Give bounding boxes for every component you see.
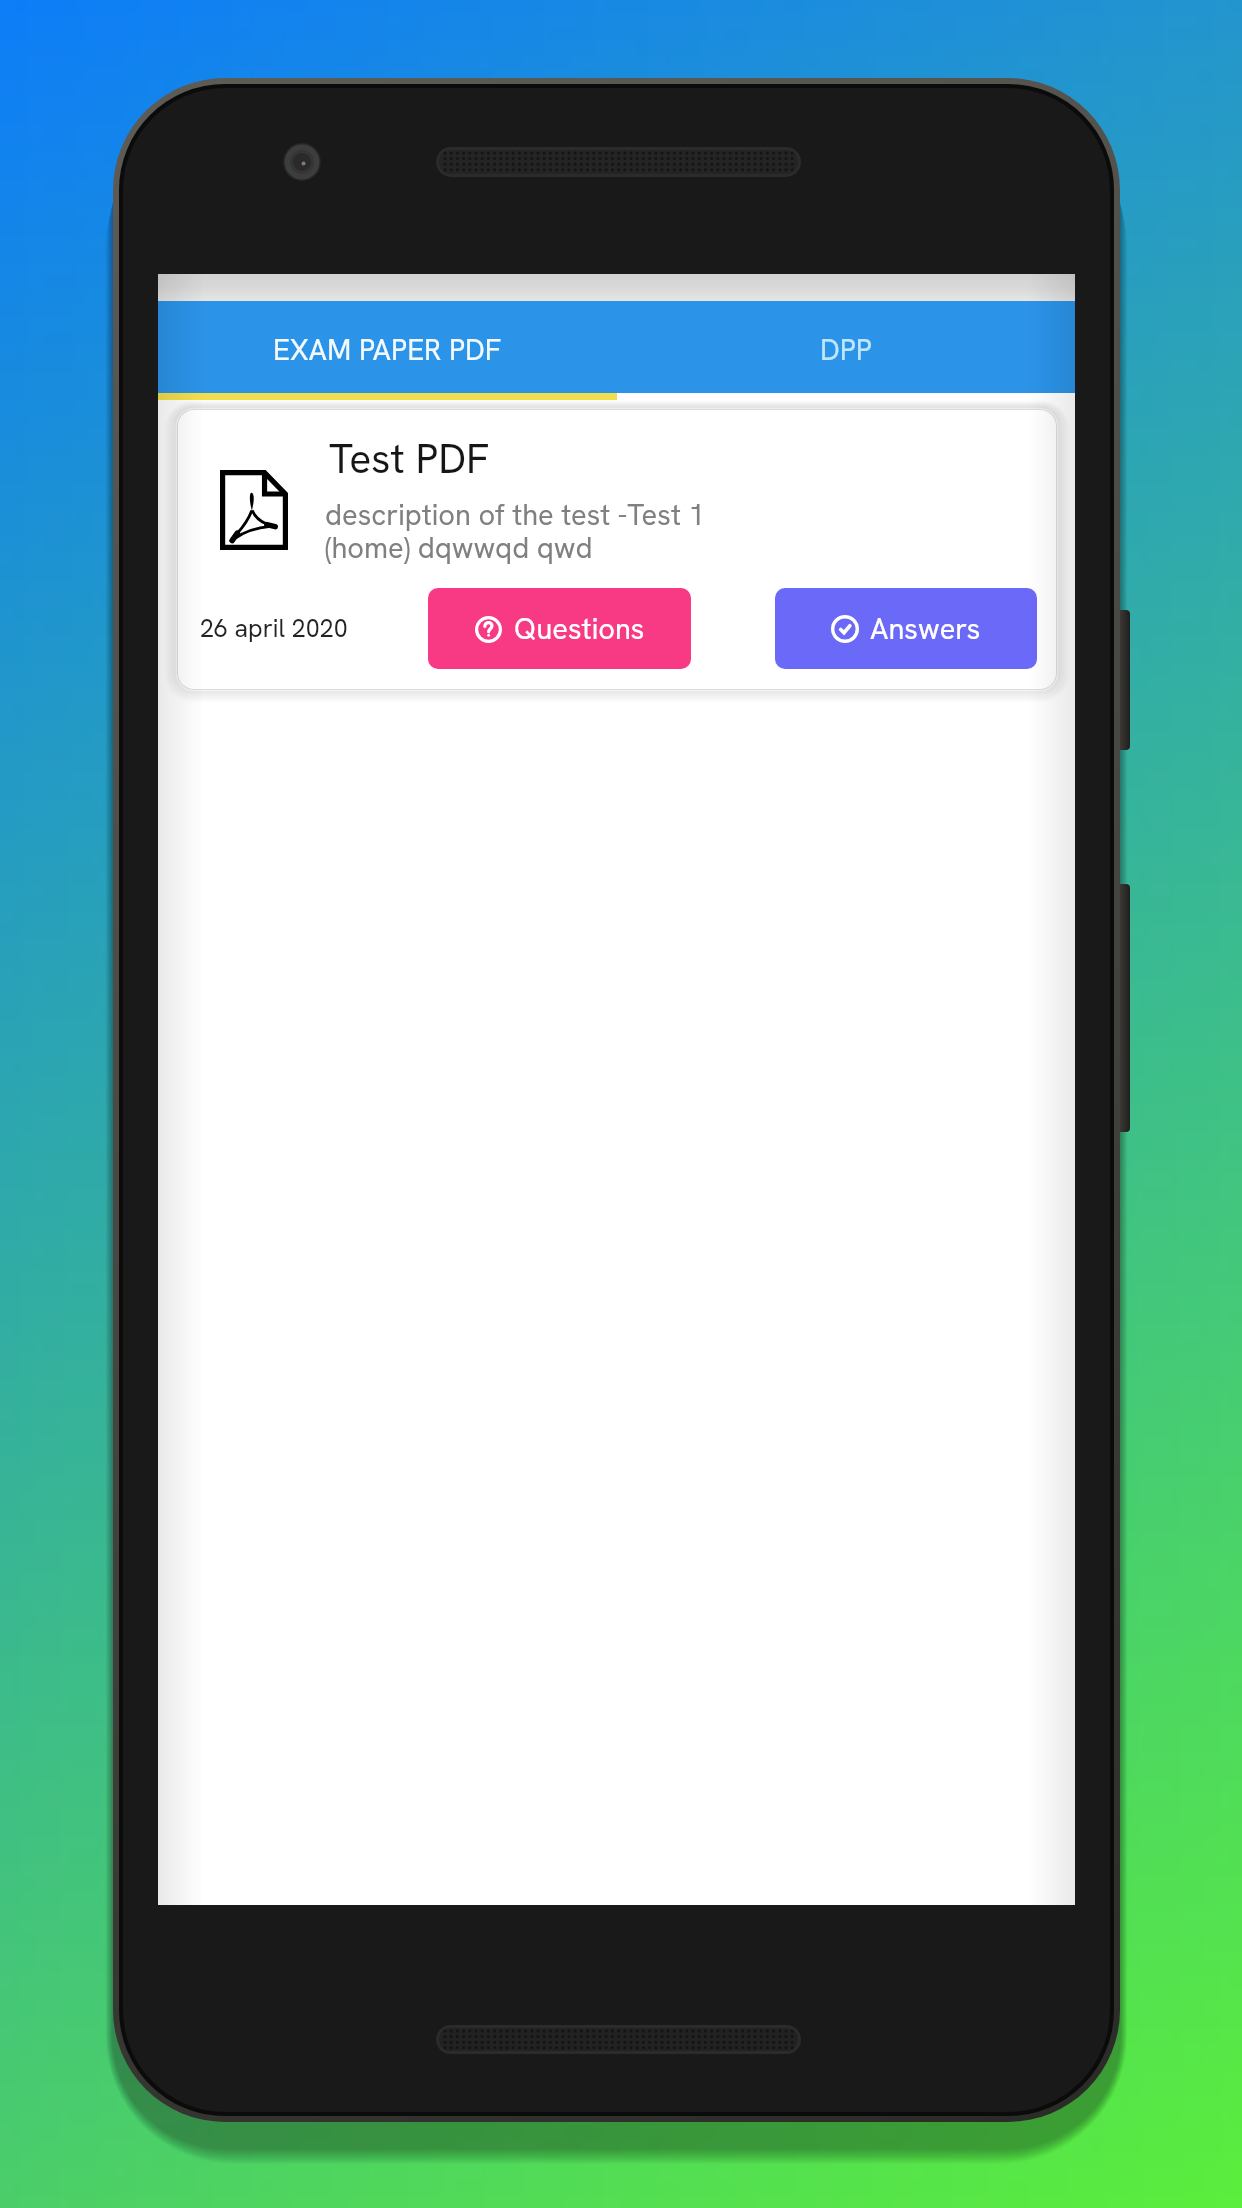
button[interactable]: Test PDF <box>177 409 1057 690</box>
staticText: Test PDF <box>329 432 490 485</box>
staticText: description of the test -Test 1 (home) d… <box>325 496 705 567</box>
staticText: Answers <box>870 610 981 648</box>
staticText: DPP <box>820 331 872 369</box>
button[interactable]: Questions <box>428 588 691 669</box>
button[interactable]: DPP <box>616 307 1075 393</box>
staticText: EXAM PAPER PDF <box>273 331 502 369</box>
staticText: 26 april 2020 <box>200 612 348 645</box>
button[interactable]: EXAM PAPER PDF <box>158 307 616 393</box>
button[interactable]: Answers <box>775 588 1037 669</box>
staticText: Questions <box>514 610 645 648</box>
